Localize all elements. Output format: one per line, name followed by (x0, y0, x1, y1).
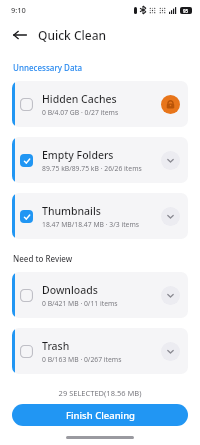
button[interactable]: Locked (161, 95, 180, 114)
button[interactable]: Expand (161, 286, 180, 305)
button[interactable]: Expand (161, 207, 180, 226)
button[interactable]: Not selected (12, 272, 188, 318)
staticText: 18.47 MB/18.47 MB · 3/3 items (42, 220, 140, 229)
staticText: Finish Cleaning (66, 409, 135, 422)
staticText: 9:10 (11, 5, 26, 15)
button[interactable]: Selected (12, 193, 188, 239)
button[interactable]: Selected (12, 137, 188, 183)
staticText: Quick Clean (38, 27, 107, 43)
button[interactable]: Not selected (20, 289, 33, 302)
button[interactable]: Not selected (20, 98, 33, 111)
staticText: Unnecessary Data (13, 62, 83, 73)
button[interactable]: Expand (161, 151, 180, 170)
staticText: 29 SELECTED(18.56 MB) (0, 388, 200, 398)
staticText: Downloads (42, 283, 98, 297)
staticText: Hidden Caches (42, 92, 117, 106)
button[interactable]: Not selected (12, 328, 188, 374)
staticText: Thumbnails (42, 204, 101, 218)
staticText: Empty Folders (42, 148, 114, 162)
button[interactable]: Expand (161, 342, 180, 361)
staticText: 89.75 kB/89.75 kB · 26/26 items (42, 164, 142, 173)
button[interactable]: Not selected (12, 81, 188, 127)
button[interactable]: Selected (20, 154, 33, 167)
button[interactable]: Selected (20, 210, 33, 223)
button[interactable]: Not selected (20, 345, 33, 358)
staticText: 0 B/163 MB · 0/267 items (42, 355, 122, 364)
staticText: Trash (42, 339, 70, 353)
button[interactable]: Finish Cleaning (12, 404, 188, 426)
staticText: Need to Review (13, 253, 73, 264)
staticText: 0 B/4.07 GB · 0/27 items (42, 108, 119, 117)
staticText: 95 (183, 8, 189, 14)
button[interactable]: Back (6, 21, 34, 49)
staticText: 0 B/421 MB · 0/11 items (42, 299, 118, 308)
